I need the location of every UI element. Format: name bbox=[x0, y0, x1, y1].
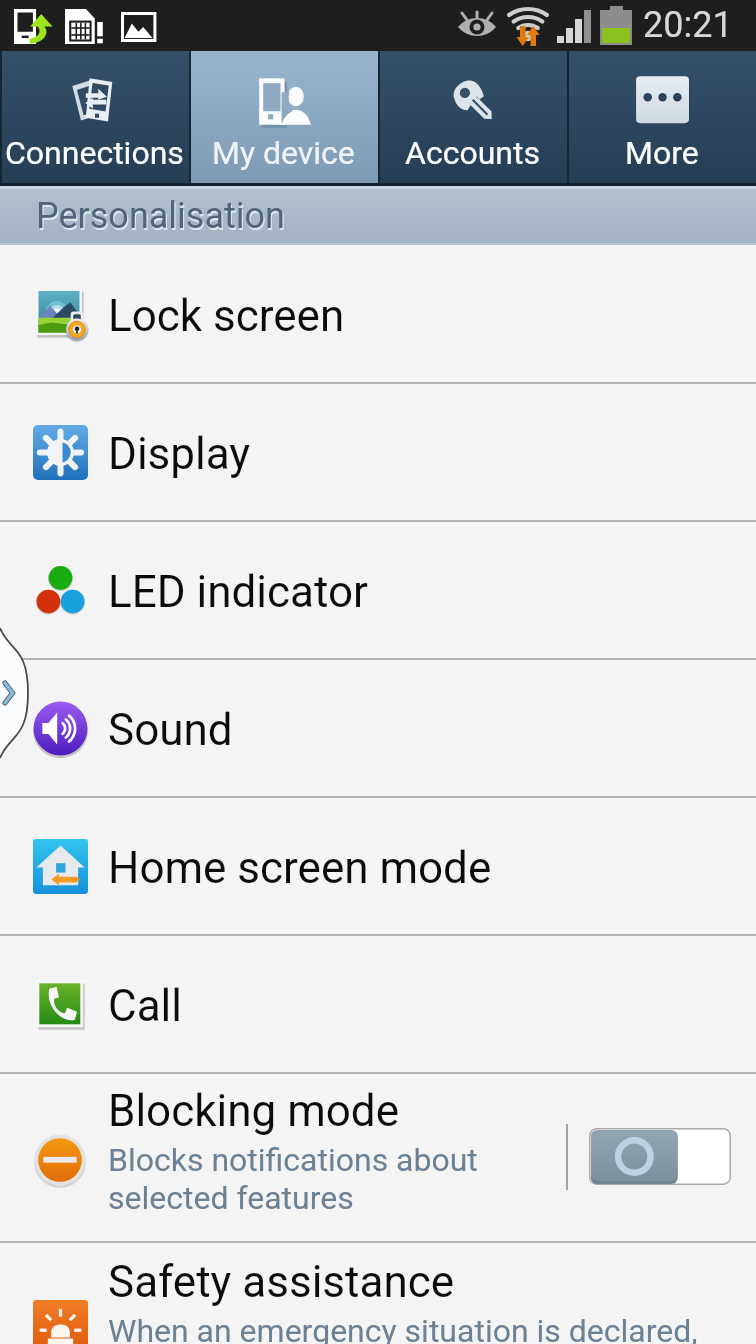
button[interactable]: Call bbox=[0, 936, 756, 1072]
button[interactable]: Open side panel bbox=[0, 628, 30, 758]
button[interactable]: Display bbox=[0, 384, 756, 520]
button[interactable]: More bbox=[567, 51, 756, 186]
staticText: My device bbox=[212, 134, 355, 172]
button[interactable]: Blocking mode toggle, off bbox=[589, 1128, 731, 1185]
button[interactable]: Lock screen bbox=[0, 245, 756, 382]
staticText: Safety assistance bbox=[108, 1256, 455, 1308]
staticText: Blocks notifications about bbox=[108, 1141, 478, 1179]
staticText: Display bbox=[108, 428, 251, 480]
staticText: When an emergency situation is declared, bbox=[108, 1312, 698, 1344]
staticText: Sound bbox=[108, 704, 233, 756]
button[interactable]: Sound bbox=[0, 660, 756, 796]
staticText: Call bbox=[108, 980, 182, 1032]
staticText: Accounts bbox=[405, 134, 540, 172]
staticText: selected features bbox=[108, 1179, 354, 1217]
button[interactable]: LED indicator bbox=[0, 522, 756, 658]
staticText: Home screen mode bbox=[108, 842, 492, 894]
button[interactable]: Safety assistance bbox=[0, 1243, 756, 1344]
staticText: More bbox=[625, 134, 699, 172]
staticText: Personalisation bbox=[37, 197, 286, 239]
button[interactable]: Connections bbox=[0, 51, 189, 186]
staticText: 20:21 bbox=[643, 4, 733, 46]
staticText: Blocking mode bbox=[108, 1085, 399, 1137]
staticText: Lock screen bbox=[108, 290, 345, 342]
staticText: Personalisation bbox=[36, 195, 285, 237]
button[interactable]: Home screen mode bbox=[0, 798, 756, 934]
button[interactable]: My device bbox=[189, 51, 378, 186]
button[interactable]: Accounts bbox=[378, 51, 567, 186]
staticText: Connections bbox=[5, 134, 184, 172]
button[interactable]: Blocking mode bbox=[0, 1074, 756, 1241]
staticText: LED indicator bbox=[108, 566, 368, 618]
